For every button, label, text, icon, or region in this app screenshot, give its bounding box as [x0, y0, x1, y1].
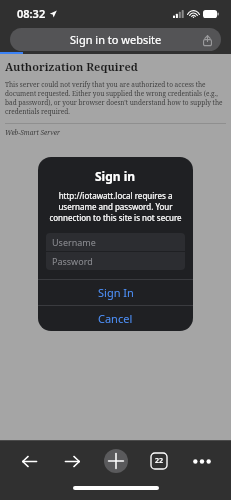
button[interactable]: Sign In: [38, 280, 193, 305]
button[interactable]: Password: [46, 252, 185, 270]
button[interactable]: New Tab: [99, 444, 133, 478]
staticText: This server could not verify that you ar…: [5, 80, 226, 116]
button[interactable]: Share: [199, 32, 215, 48]
staticText: Authorization Required: [5, 59, 138, 74]
button[interactable]: More: [185, 444, 219, 478]
staticText: Cancel: [98, 311, 133, 326]
staticText: Sign in: [95, 168, 136, 184]
staticText: Username: [52, 236, 96, 248]
staticText: 08:32: [17, 6, 46, 21]
staticText: Web-Smart Server: [5, 128, 61, 137]
staticText: Password: [52, 255, 93, 267]
button[interactable]: Username: [46, 233, 185, 251]
staticText: Sign in to website: [70, 32, 162, 47]
button[interactable]: Sign in to website: [10, 28, 221, 51]
button[interactable]: Back: [12, 444, 46, 478]
button[interactable]: Forward: [55, 444, 89, 478]
staticText: Sign In: [98, 285, 134, 300]
staticText: http://iotawatt.local requires a usernam…: [49, 190, 182, 223]
staticText: 22: [155, 456, 164, 466]
button[interactable]: Cancel: [38, 306, 193, 331]
button[interactable]: Tabs: [142, 444, 176, 478]
